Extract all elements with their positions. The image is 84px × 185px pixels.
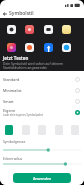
button[interactable]: App [7,43,16,52]
button[interactable]: Slider [3,162,81,166]
button[interactable]: App [62,25,71,34]
button[interactable]: Back [0,9,9,18]
button[interactable]: Slider [3,148,81,152]
button[interactable]: Anwenden [13,173,71,183]
button[interactable]: App [44,25,53,34]
button[interactable]: App [44,43,53,52]
staticText: Eckenradius [3,156,23,161]
button[interactable]: Standard [3,74,80,85]
button[interactable]: Eigene [3,107,80,118]
button[interactable]: App [25,25,34,34]
button[interactable]: App [7,25,16,34]
button[interactable]: Smart [3,96,80,107]
button[interactable]: App [25,43,34,52]
staticText: Symbolstil [9,10,34,17]
staticText: Dein Symbolstil wird sofort auf deinem [3,61,64,65]
staticText: Startbildschirm angewendet [3,65,47,69]
button[interactable]: App [62,43,71,52]
button[interactable]: Colour [5,125,13,135]
staticText: Minimalist [3,88,22,93]
staticText: Eigene [3,108,16,113]
button[interactable]: Minimalist [3,85,80,96]
staticText: Symbolgrosse [3,139,26,144]
staticText: Lade dein eigenes Symbolpaket [3,113,43,117]
staticText: Anwenden [33,176,52,181]
staticText: Standard [3,77,20,82]
staticText: Smart [3,99,14,104]
staticText: Jetzt Testen [3,55,29,61]
